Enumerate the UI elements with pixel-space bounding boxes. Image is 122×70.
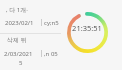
staticText: 2023/02/1 — [5, 19, 34, 27]
staticText: 21:35:51 — [72, 23, 102, 33]
staticText: 2/03/2021 — [4, 50, 33, 58]
staticText: , 다 1개· — [6, 6, 28, 14]
staticText: ,n 05 — [44, 50, 58, 58]
staticText: 5 — [19, 59, 23, 67]
button[interactable]: , 다 1개· — [6, 6, 28, 14]
staticText: cy;n5 — [44, 19, 59, 27]
staticText: 삭제 뒤 — [7, 36, 27, 44]
button[interactable]: 삭제 뒤 — [7, 36, 27, 44]
